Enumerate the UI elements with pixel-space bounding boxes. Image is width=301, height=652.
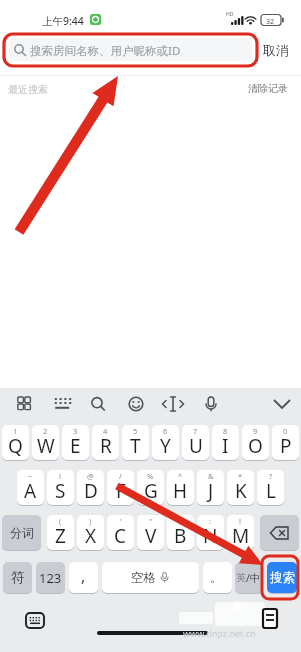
button[interactable]	[260, 515, 299, 550]
button[interactable]: ,	[69, 562, 98, 593]
button[interactable]: 取消	[258, 38, 294, 61]
button[interactable]: 空格	[102, 562, 199, 593]
staticText: 2	[43, 426, 48, 436]
staticText: (	[59, 516, 62, 526]
button[interactable]: K	[227, 470, 254, 505]
staticText: 搜索	[270, 570, 295, 586]
staticText: R	[100, 433, 112, 459]
button[interactable]: 分词	[2, 515, 41, 550]
button[interactable]	[9, 38, 252, 61]
button[interactable]: T	[122, 425, 149, 460]
staticText: Z	[55, 523, 66, 549]
button[interactable]: A	[17, 470, 44, 505]
button[interactable]: L	[257, 470, 284, 505]
staticText: 英	[236, 571, 246, 584]
button[interactable]: H	[167, 470, 194, 505]
button[interactable]: X	[77, 515, 104, 550]
staticText: *	[238, 471, 243, 481]
staticText: K	[235, 478, 247, 504]
staticText: J	[208, 478, 214, 504]
staticText: /中	[246, 571, 261, 585]
staticText: 分词	[10, 525, 34, 540]
button[interactable]: V	[137, 515, 164, 550]
staticText: T	[130, 433, 141, 459]
staticText: ?	[269, 471, 273, 481]
staticText: 32	[266, 17, 275, 27]
staticText: C	[114, 523, 127, 549]
staticText: 最近搜索	[8, 83, 48, 96]
button[interactable]: G	[137, 470, 164, 505]
staticText: @	[87, 471, 94, 481]
button[interactable]: Y	[152, 425, 179, 460]
staticText: HD	[226, 11, 234, 18]
staticText: U	[189, 433, 203, 459]
staticText: 6	[163, 426, 168, 436]
button[interactable]: 英	[235, 562, 263, 593]
staticText: '	[120, 516, 122, 526]
staticText: 搜索房间名称、用户昵称或ID	[30, 43, 181, 59]
staticText: F	[116, 478, 126, 504]
staticText: X	[85, 523, 97, 549]
button[interactable]: 清除记录	[244, 80, 292, 96]
staticText: H	[173, 478, 188, 504]
button[interactable]: S	[47, 470, 74, 505]
button[interactable]: W	[32, 425, 59, 460]
button[interactable]: B	[167, 515, 194, 550]
staticText: ~	[28, 471, 33, 481]
staticText: E	[70, 433, 81, 459]
staticText: 7	[193, 426, 198, 436]
button[interactable]: 搜索	[267, 562, 297, 593]
button[interactable]: J	[197, 470, 224, 505]
button[interactable]: 符	[3, 562, 32, 593]
button[interactable]: P	[272, 425, 299, 460]
button[interactable]: 123	[36, 562, 65, 593]
button[interactable]: D	[77, 470, 104, 505]
button[interactable]: 。	[203, 562, 232, 593]
staticText: M	[232, 523, 250, 549]
staticText: G	[144, 478, 158, 504]
staticText: 123	[39, 569, 62, 587]
button[interactable]: C	[107, 515, 134, 550]
staticText: 3	[73, 426, 78, 436]
staticText: V	[145, 523, 157, 549]
button[interactable]: U	[182, 425, 209, 460]
staticText: ^	[178, 471, 183, 481]
staticText: A	[24, 478, 37, 504]
staticText: 4	[103, 426, 108, 436]
staticText: Q	[8, 433, 23, 459]
staticText: 8	[223, 426, 228, 436]
staticText: "	[149, 516, 153, 526]
staticText: )	[89, 516, 92, 526]
staticText: &	[208, 471, 214, 481]
staticText: /	[119, 471, 122, 481]
staticText: I	[222, 433, 229, 459]
staticText: 1	[13, 426, 18, 436]
button[interactable]: R	[92, 425, 119, 460]
button[interactable]: M	[227, 515, 254, 550]
staticText: S	[55, 478, 66, 504]
staticText: 清除记录	[248, 82, 288, 95]
staticText: 0	[283, 426, 288, 436]
button[interactable]: F	[107, 470, 134, 505]
staticText: O	[248, 433, 263, 459]
staticText: 取消	[263, 42, 289, 58]
button[interactable]: O	[242, 425, 269, 460]
staticText: N	[203, 523, 218, 549]
button[interactable]: E	[62, 425, 89, 460]
button[interactable]: I	[212, 425, 239, 460]
staticText: 上午9:44	[42, 14, 84, 28]
staticText: 。	[210, 570, 223, 586]
staticText: %	[147, 471, 154, 481]
staticText: :	[209, 516, 212, 526]
staticText: ;	[179, 516, 182, 526]
staticText: 5	[133, 426, 138, 436]
button[interactable]: Z	[47, 515, 74, 550]
staticText: W	[37, 433, 55, 459]
staticText: D	[84, 478, 98, 504]
staticText: 9	[253, 426, 258, 436]
staticText: www.dnpz.net.cn	[183, 627, 256, 639]
staticText: P	[280, 433, 292, 459]
button[interactable]: N	[197, 515, 224, 550]
button[interactable]: Q	[2, 425, 29, 460]
staticText: !	[239, 516, 242, 526]
